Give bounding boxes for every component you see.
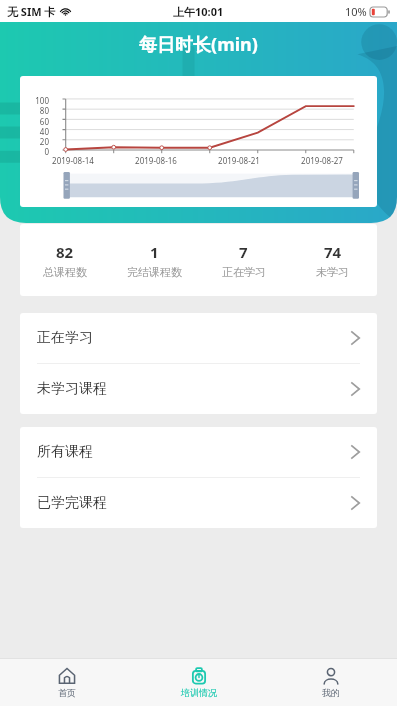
staticText: 1 [150, 242, 159, 262]
staticText: 7 [239, 242, 248, 262]
staticText: 正在学习 [37, 329, 93, 347]
button[interactable]: 74 [288, 242, 377, 279]
staticText: 2019-08-27 [290, 155, 354, 166]
staticText: 所有课程 [37, 443, 93, 461]
staticText: 未学习课程 [37, 380, 107, 398]
staticText: 上午10:01 [173, 4, 224, 19]
staticText: 首页 [58, 687, 76, 698]
staticText: 正在学习 [222, 265, 266, 279]
button[interactable]: 培训情况 [133, 658, 265, 706]
staticText: 40 [25, 126, 49, 137]
button[interactable]: 未学习课程 [20, 364, 377, 414]
staticText: 20 [25, 136, 49, 147]
staticText: 每日时长(min) [0, 32, 397, 57]
staticText: 总课程数 [43, 265, 87, 279]
staticText: 我的 [322, 687, 340, 698]
staticText: 2019-08-16 [124, 155, 188, 166]
button[interactable]: 已学完课程 [20, 478, 377, 528]
staticText: 2019-08-14 [41, 155, 105, 166]
button[interactable]: 首页 [0, 658, 133, 706]
button[interactable]: 我的 [265, 658, 397, 706]
staticText: 80 [25, 105, 49, 116]
button[interactable]: 82 [20, 242, 110, 279]
button[interactable]: 7 [199, 242, 288, 279]
staticText: 74 [324, 242, 342, 262]
staticText: 培训情况 [181, 687, 217, 698]
staticText: 82 [56, 242, 74, 262]
staticText: 60 [25, 116, 49, 127]
staticText: 已学完课程 [37, 494, 107, 512]
staticText: 无 SIM 卡 [7, 4, 56, 19]
staticText: 2019-08-21 [207, 155, 271, 166]
staticText: 完结课程数 [127, 265, 182, 279]
button[interactable]: 1 [110, 242, 199, 279]
staticText: 100 [25, 95, 49, 106]
staticText: 10% [345, 4, 367, 19]
staticText: 未学习 [316, 265, 349, 279]
button[interactable]: 所有课程 [20, 427, 377, 477]
staticText: 0 [25, 146, 49, 157]
button[interactable]: 正在学习 [20, 313, 377, 363]
